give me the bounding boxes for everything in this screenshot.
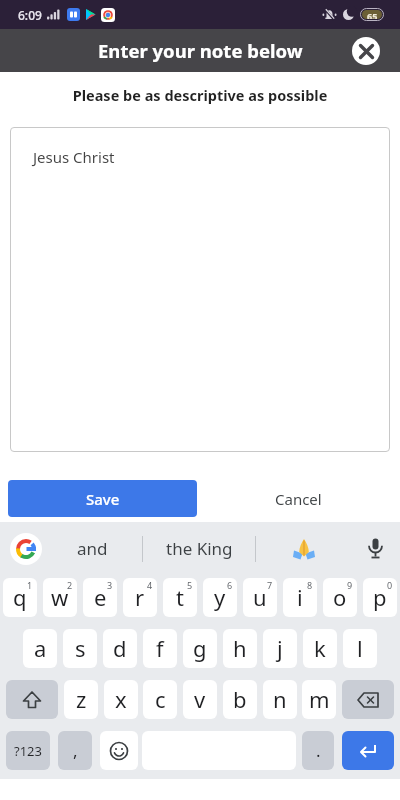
- staticText: 7: [267, 579, 273, 591]
- staticText: j: [277, 633, 283, 663]
- button[interactable]: h: [223, 629, 257, 668]
- staticText: 2: [67, 579, 73, 591]
- staticText: y: [214, 582, 226, 612]
- button[interactable]: o: [323, 578, 357, 617]
- staticText: 9: [347, 579, 353, 591]
- button[interactable]: q: [3, 578, 37, 617]
- button[interactable]: Save: [8, 480, 197, 517]
- button[interactable]: ,: [58, 731, 92, 770]
- staticText: d: [113, 633, 127, 663]
- button[interactable]: Jesus Christ: [10, 127, 390, 452]
- staticText: 6: [227, 579, 233, 591]
- staticText: p: [373, 582, 387, 612]
- button[interactable]: y: [203, 578, 237, 617]
- button[interactable]: r: [123, 578, 157, 617]
- button[interactable]: m: [302, 680, 336, 719]
- staticText: 5: [187, 579, 193, 591]
- button[interactable]: z: [64, 680, 98, 719]
- staticText: Cancel: [275, 489, 322, 509]
- button[interactable]: [342, 731, 394, 770]
- button[interactable]: x: [104, 680, 138, 719]
- staticText: Please be as descriptive as possible: [0, 85, 400, 105]
- staticText: g: [193, 633, 207, 663]
- staticText: z: [76, 684, 87, 714]
- staticText: and: [77, 537, 108, 560]
- button[interactable]: i: [283, 578, 317, 617]
- staticText: 6:09: [18, 7, 42, 23]
- staticText: v: [194, 684, 206, 714]
- staticText: 4: [147, 579, 153, 591]
- button[interactable]: t: [163, 578, 197, 617]
- button[interactable]: f: [143, 629, 177, 668]
- button[interactable]: the King: [143, 522, 255, 575]
- button[interactable]: b: [223, 680, 257, 719]
- button[interactable]: s: [63, 629, 97, 668]
- staticText: w: [51, 582, 69, 612]
- staticText: u: [253, 582, 267, 612]
- button[interactable]: u: [243, 578, 277, 617]
- button[interactable]: and: [42, 522, 142, 575]
- staticText: n: [273, 684, 287, 714]
- button[interactable]: Cancel: [197, 480, 400, 517]
- staticText: Jesus Christ: [33, 147, 115, 167]
- staticText: t: [176, 582, 184, 612]
- button[interactable]: a: [23, 629, 57, 668]
- staticText: m: [309, 684, 330, 714]
- staticText: e: [94, 582, 107, 612]
- staticText: x: [115, 684, 127, 714]
- button[interactable]: ?123: [6, 731, 50, 770]
- button[interactable]: .: [302, 731, 334, 770]
- staticText: k: [314, 633, 326, 663]
- staticText: Save: [86, 489, 120, 509]
- button[interactable]: [100, 731, 138, 770]
- button[interactable]: [342, 680, 394, 719]
- button[interactable]: k: [303, 629, 337, 668]
- staticText: the King: [166, 537, 233, 560]
- button[interactable]: w: [43, 578, 77, 617]
- button[interactable]: v: [183, 680, 217, 719]
- button[interactable]: c: [143, 680, 177, 719]
- staticText: a: [34, 633, 47, 663]
- staticText: 8: [307, 579, 313, 591]
- button[interactable]: [6, 680, 58, 719]
- staticText: f: [156, 633, 164, 663]
- button[interactable]: [10, 533, 42, 565]
- staticText: i: [297, 582, 303, 612]
- button[interactable]: j: [263, 629, 297, 668]
- staticText: ?123: [14, 742, 42, 760]
- staticText: 3: [107, 579, 113, 591]
- button[interactable]: p: [363, 578, 397, 617]
- staticText: 0: [387, 579, 393, 591]
- button[interactable]: g: [183, 629, 217, 668]
- button[interactable]: [351, 522, 400, 575]
- staticText: q: [13, 582, 27, 612]
- staticText: ,: [73, 739, 78, 762]
- button[interactable]: [352, 37, 380, 65]
- staticText: b: [233, 684, 247, 714]
- staticText: l: [357, 633, 363, 663]
- button[interactable]: e: [83, 578, 117, 617]
- staticText: Enter your note below: [98, 38, 303, 63]
- staticText: h: [233, 633, 247, 663]
- staticText: .: [316, 739, 321, 762]
- staticText: c: [155, 684, 166, 714]
- button[interactable]: n: [263, 680, 297, 719]
- staticText: o: [333, 582, 347, 612]
- staticText: s: [75, 633, 86, 663]
- button[interactable]: [256, 522, 351, 575]
- staticText: r: [135, 582, 145, 612]
- button[interactable]: l: [343, 629, 377, 668]
- staticText: 1: [27, 579, 33, 591]
- button[interactable]: d: [103, 629, 137, 668]
- staticText: 65: [367, 10, 378, 19]
